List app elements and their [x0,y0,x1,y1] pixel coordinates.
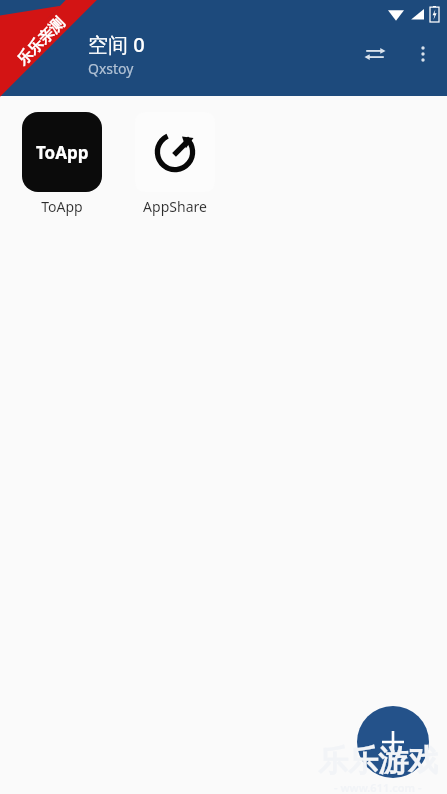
staticText: ToApp [36,141,89,164]
button[interactable]: AppShare [135,112,215,216]
staticText: 乐乐游戏 [318,742,438,780]
staticText: AppShare [143,197,207,216]
staticText: Qxstoy [88,59,134,78]
button[interactable]: Transfer [351,30,399,78]
staticText: 空间 0 [88,31,145,58]
button[interactable]: More options [399,30,447,78]
staticText: ToApp [41,197,83,216]
staticText: 乐乐亲测 [13,14,69,69]
button[interactable]: Add [357,706,429,778]
button[interactable]: Open navigation drawer [0,30,48,78]
button[interactable]: ToApp [22,112,102,216]
